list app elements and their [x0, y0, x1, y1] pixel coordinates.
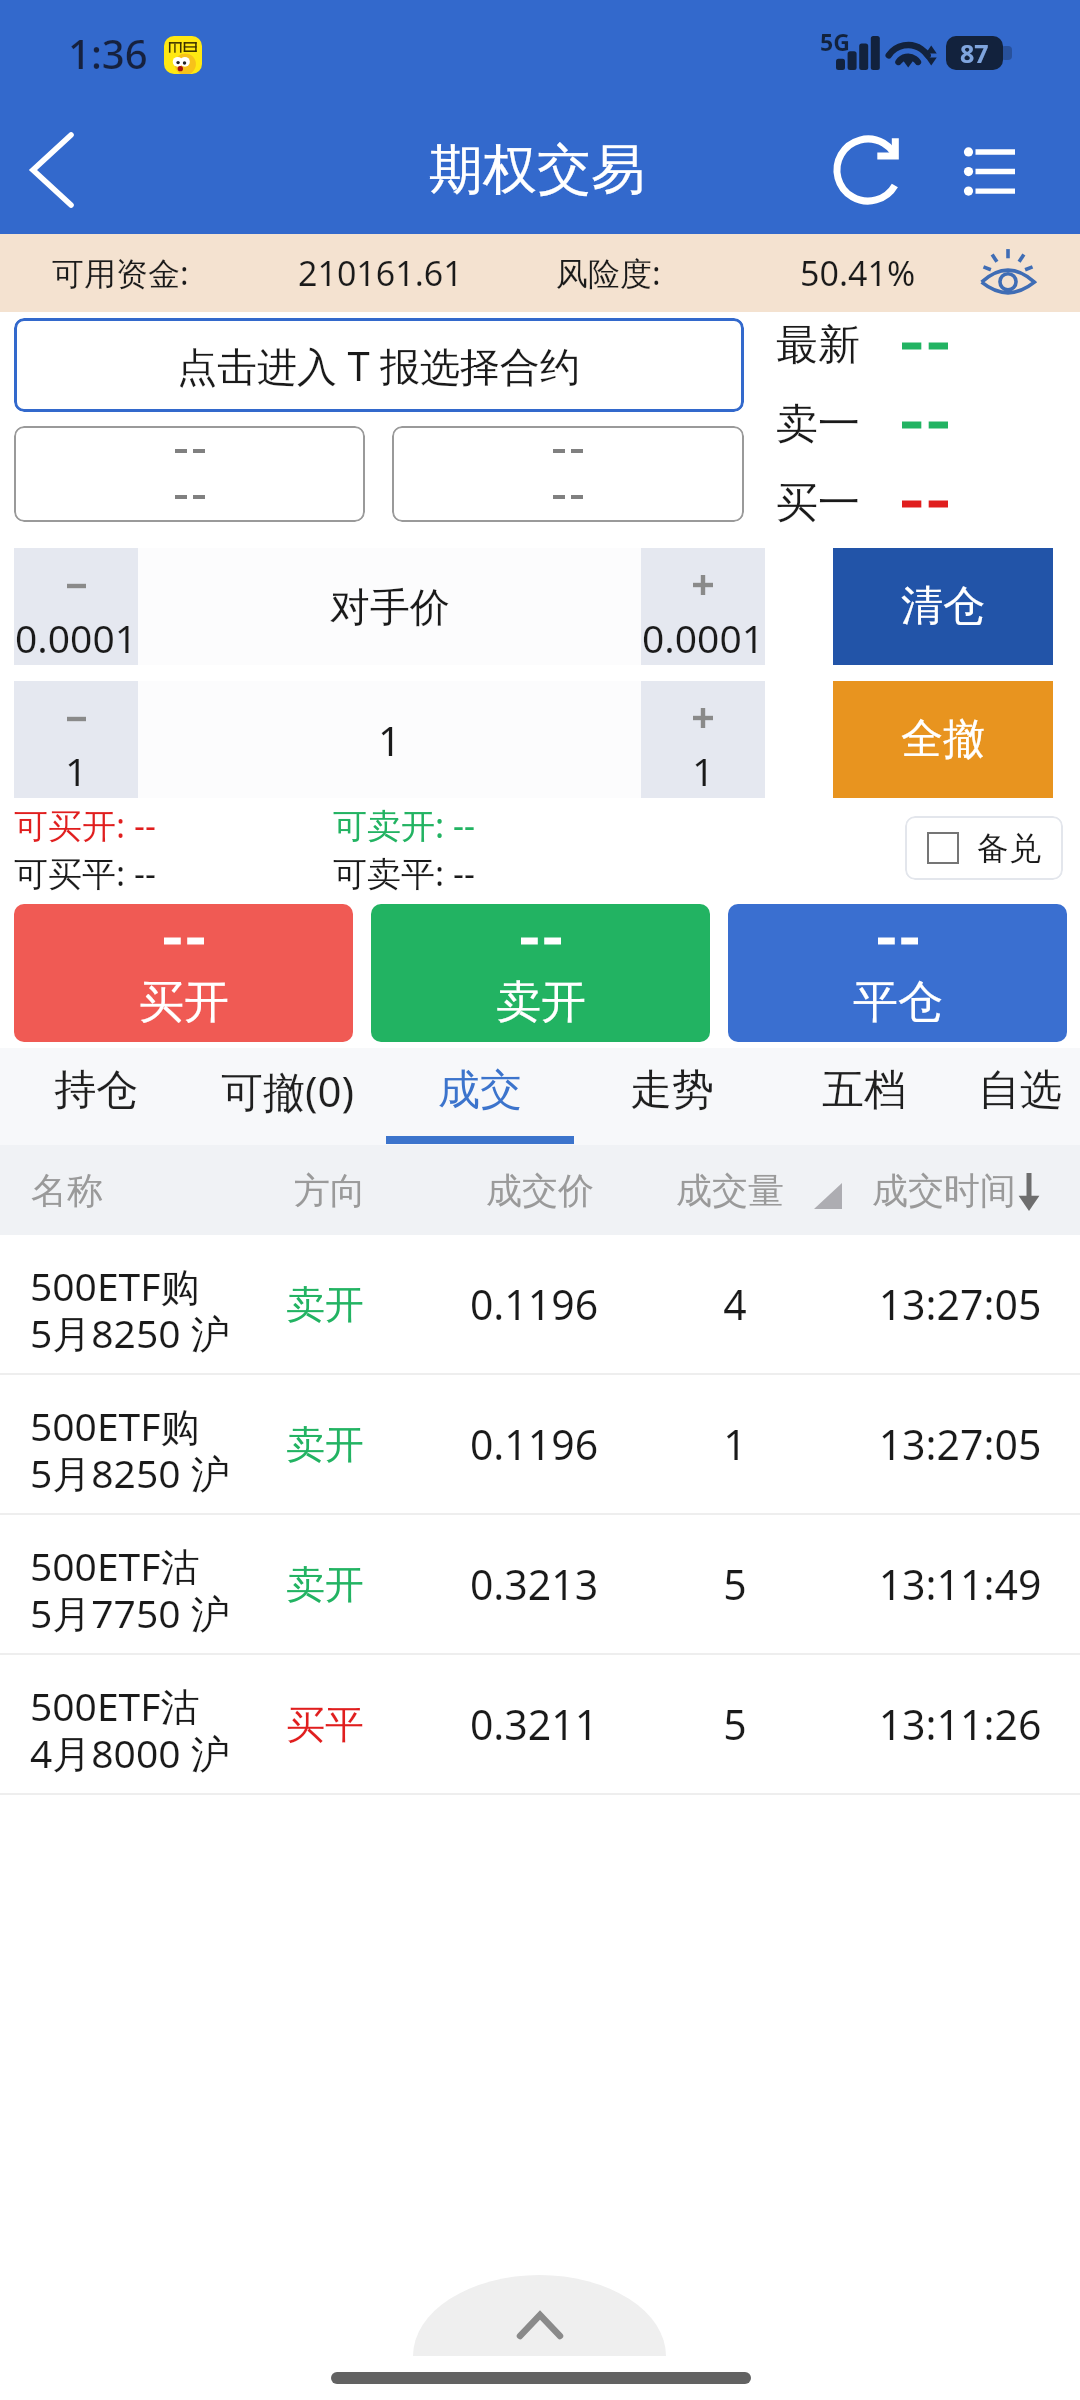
- staticText: 清仓: [901, 580, 985, 633]
- staticText: 1: [65, 744, 88, 797]
- button[interactable]: 可撤(0): [192, 1048, 384, 1145]
- button[interactable]: 500ETF购: [0, 1235, 1080, 1373]
- button[interactable]: 自选: [960, 1048, 1080, 1145]
- staticText: 0.0001: [642, 611, 764, 664]
- button[interactable]: 走势: [576, 1048, 768, 1145]
- button[interactable]: 持仓: [0, 1048, 192, 1145]
- staticText: 期权交易: [429, 136, 645, 204]
- staticText: 可卖平: --: [333, 850, 475, 896]
- staticText: 500ETF购: [30, 1259, 200, 1312]
- button[interactable]: Expand panel: [413, 2275, 666, 2356]
- staticText: 可买开: --: [14, 802, 156, 848]
- staticText: 13:11:49: [860, 1556, 1060, 1612]
- staticText: 成交: [438, 1064, 522, 1117]
- staticText: 5月7750 沪: [30, 1586, 230, 1639]
- button[interactable]: Refresh: [823, 125, 913, 215]
- staticText: 可撤(0): [221, 1062, 355, 1119]
- staticText: 对手价: [330, 582, 450, 632]
- button[interactable]: Back: [4, 122, 100, 218]
- staticText: 备兑: [977, 828, 1041, 868]
- staticText: 名称: [31, 1168, 103, 1213]
- staticText: 走势: [630, 1064, 714, 1117]
- staticText: 13:11:26: [860, 1696, 1060, 1752]
- staticText: 卖开: [265, 1420, 385, 1469]
- button[interactable]: Toggle visibility: [978, 243, 1038, 303]
- staticText: 买平: [265, 1700, 385, 1749]
- staticText: 1:36: [68, 26, 148, 80]
- staticText: 点击进入 T 报选择合约: [177, 338, 581, 393]
- staticText: 0.3213: [444, 1556, 624, 1612]
- button[interactable]: 五档: [768, 1048, 960, 1145]
- staticText: 5: [645, 1556, 825, 1612]
- button[interactable]: 成交: [384, 1048, 576, 1145]
- staticText: 0.1196: [444, 1416, 624, 1472]
- staticText: 卖开: [496, 974, 586, 1031]
- staticText: 4月8000 沪: [30, 1726, 230, 1779]
- button[interactable]: Increase: [641, 548, 765, 665]
- staticText: 方向: [270, 1168, 390, 1213]
- button[interactable]: Increase: [641, 681, 765, 798]
- button[interactable]: 全撤: [833, 681, 1053, 798]
- button[interactable]: 平仓: [728, 904, 1067, 1042]
- button[interactable]: 清仓: [833, 548, 1053, 665]
- button[interactable]: 点击进入 T 报选择合约: [14, 318, 744, 412]
- button[interactable]: 买开: [14, 904, 353, 1042]
- staticText: 平仓: [853, 974, 943, 1031]
- button[interactable]: 500ETF购: [0, 1375, 1080, 1513]
- staticText: 0.1196: [444, 1276, 624, 1332]
- staticText: 210161.61: [298, 250, 463, 296]
- staticText: 50.41%: [800, 250, 916, 296]
- staticText: 5月8250 沪: [30, 1306, 230, 1359]
- staticText: 13:27:05: [860, 1416, 1060, 1472]
- staticText: 成交量: [640, 1168, 820, 1213]
- staticText: 自选: [978, 1064, 1062, 1117]
- staticText: 500ETF购: [30, 1399, 200, 1452]
- staticText: 1: [378, 713, 401, 767]
- staticText: 1: [645, 1416, 825, 1472]
- staticText: 500ETF沽: [30, 1679, 200, 1732]
- button[interactable]: 卖开: [371, 904, 710, 1042]
- button[interactable]: Menu: [940, 120, 1040, 220]
- staticText: 87: [960, 36, 989, 70]
- staticText: 5: [645, 1696, 825, 1752]
- staticText: 卖开: [265, 1280, 385, 1329]
- staticText: 最新: [776, 319, 860, 372]
- button[interactable]: Decrease: [14, 681, 138, 798]
- staticText: 卖开: [265, 1560, 385, 1609]
- staticText: 买一: [776, 477, 860, 530]
- button[interactable]: [14, 426, 365, 522]
- button[interactable]: 500ETF沽: [0, 1515, 1080, 1653]
- staticText: 5月8250 沪: [30, 1446, 230, 1499]
- staticText: 可卖开: --: [333, 802, 475, 848]
- staticText: 成交价: [450, 1168, 630, 1213]
- staticText: 500ETF沽: [30, 1539, 200, 1592]
- button[interactable]: 备兑: [905, 816, 1063, 880]
- staticText: 0.3211: [444, 1696, 624, 1752]
- staticText: 1: [692, 744, 715, 797]
- staticText: 成交时间: [872, 1168, 1016, 1213]
- staticText: 买开: [139, 974, 229, 1031]
- staticText: 13:27:05: [860, 1276, 1060, 1332]
- staticText: 五档: [822, 1064, 906, 1117]
- staticText: 0.0001: [15, 611, 137, 664]
- button[interactable]: 500ETF沽: [0, 1655, 1080, 1793]
- staticText: 可买平: --: [14, 850, 156, 896]
- staticText: 5G: [820, 26, 850, 57]
- staticText: 风险度:: [556, 251, 661, 295]
- button[interactable]: [392, 426, 744, 522]
- button[interactable]: Decrease: [14, 548, 138, 665]
- staticText: 全撤: [901, 713, 985, 766]
- staticText: 卖一: [776, 398, 860, 451]
- staticText: 可用资金:: [52, 251, 189, 295]
- staticText: 持仓: [54, 1064, 138, 1117]
- staticText: 4: [645, 1276, 825, 1332]
